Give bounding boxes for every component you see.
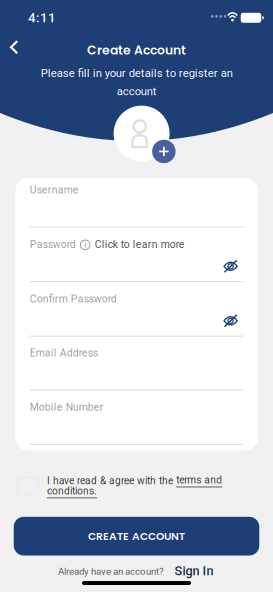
staticText: terms and: [176, 474, 222, 486]
staticText: Please fill in your details to register …: [40, 66, 232, 98]
staticText: Click to learn more: [95, 238, 185, 250]
staticText: CREATE ACCOUNT: [88, 529, 185, 544]
button[interactable]: CREATE ACCOUNT: [14, 517, 259, 555]
staticText: I have read & agree with the: [47, 475, 173, 487]
button[interactable]: Add profile photo: [152, 140, 176, 163]
button[interactable]: Sign In: [175, 564, 214, 578]
button[interactable]: Back: [3, 33, 25, 61]
button[interactable]: conditions.: [47, 485, 97, 498]
staticText: Already have an account?: [58, 566, 164, 577]
staticText: Mobile Number: [30, 401, 104, 413]
staticText: i: [84, 240, 86, 249]
staticText: 4:11: [28, 10, 56, 26]
staticText: Create Account: [87, 41, 186, 59]
staticText: conditions.: [47, 485, 97, 497]
button[interactable]: terms and: [176, 474, 222, 487]
staticText: Confirm Password: [30, 293, 117, 305]
staticText: Username: [30, 184, 79, 196]
staticText: Password: [30, 238, 76, 250]
button[interactable]: Show confirm password: [223, 314, 238, 328]
button[interactable]: Show password: [223, 259, 238, 273]
staticText: Sign In: [175, 564, 214, 578]
staticText: Email Address: [30, 347, 98, 359]
